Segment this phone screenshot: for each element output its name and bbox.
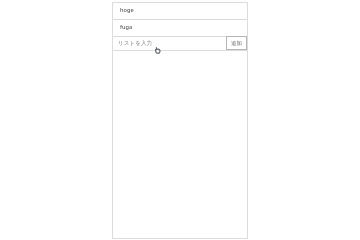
button[interactable]: リストを入力 bbox=[112, 37, 226, 50]
button[interactable]: fuga bbox=[112, 20, 248, 36]
button[interactable]: 追加 bbox=[226, 36, 247, 50]
staticText: hoge bbox=[120, 6, 134, 14]
staticText: 追加 bbox=[231, 40, 242, 47]
other: Pointer bbox=[154, 46, 162, 55]
staticText: fuga bbox=[120, 23, 133, 31]
staticText: リストを入力 bbox=[118, 40, 153, 47]
button[interactable]: hoge bbox=[112, 3, 248, 19]
